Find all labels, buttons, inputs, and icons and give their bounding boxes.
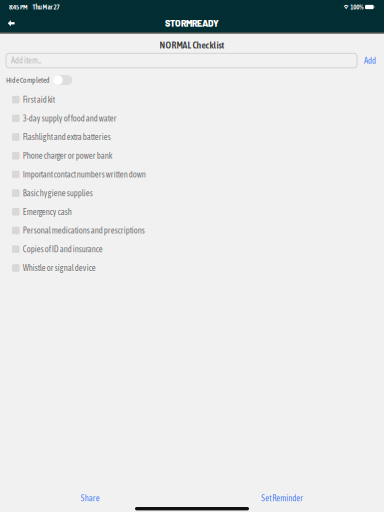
staticText: STORMREADY [165, 18, 219, 29]
staticText: Flashlight and extra batteries [23, 132, 111, 142]
staticText: Thu Mar 27 [32, 3, 59, 11]
button[interactable]: First aid kit [0, 90, 384, 109]
staticText: Share [81, 493, 100, 503]
staticText: Whistle or signal device [23, 263, 96, 273]
staticText: 100% [350, 3, 363, 11]
button[interactable]: Add [357, 53, 384, 68]
button[interactable]: Basic hygiene supplies [0, 184, 384, 202]
button[interactable]: Whistle or signal device [0, 259, 384, 277]
button[interactable]: Set Reminder [251, 489, 313, 507]
staticText: Emergency cash [23, 207, 72, 217]
staticText: First aid kit [23, 95, 55, 104]
staticText: Phone charger or power bank [23, 151, 113, 161]
button[interactable]: Personal medications and prescriptions [0, 221, 384, 240]
staticText: 3-day supply of food and water [23, 113, 117, 123]
staticText: Hide Completed [6, 76, 50, 84]
button[interactable]: Share [71, 489, 110, 507]
button[interactable]: Copies of ID and insurance [0, 240, 384, 259]
button[interactable]: Hide Completed [50, 75, 72, 85]
staticText: Set Reminder [261, 493, 303, 503]
button[interactable]: Back [0, 14, 22, 32]
staticText: Basic hygiene supplies [23, 188, 93, 198]
staticText: Copies of ID and insurance [23, 244, 103, 254]
button[interactable]: 3-day supply of food and water [0, 109, 384, 128]
button[interactable]: Phone charger or power bank [0, 146, 384, 165]
staticText: NORMAL Checklist [159, 39, 224, 50]
button[interactable]: Flashlight and extra batteries [0, 128, 384, 146]
staticText: Personal medications and prescriptions [23, 226, 145, 235]
button[interactable]: Emergency cash [0, 202, 384, 221]
staticText: 8:45 PM [9, 3, 28, 11]
button[interactable]: Important contact numbers written down [0, 165, 384, 184]
staticText: Add item... [11, 56, 41, 65]
staticText: Important contact numbers written down [23, 169, 146, 179]
staticText: Add [364, 56, 376, 65]
